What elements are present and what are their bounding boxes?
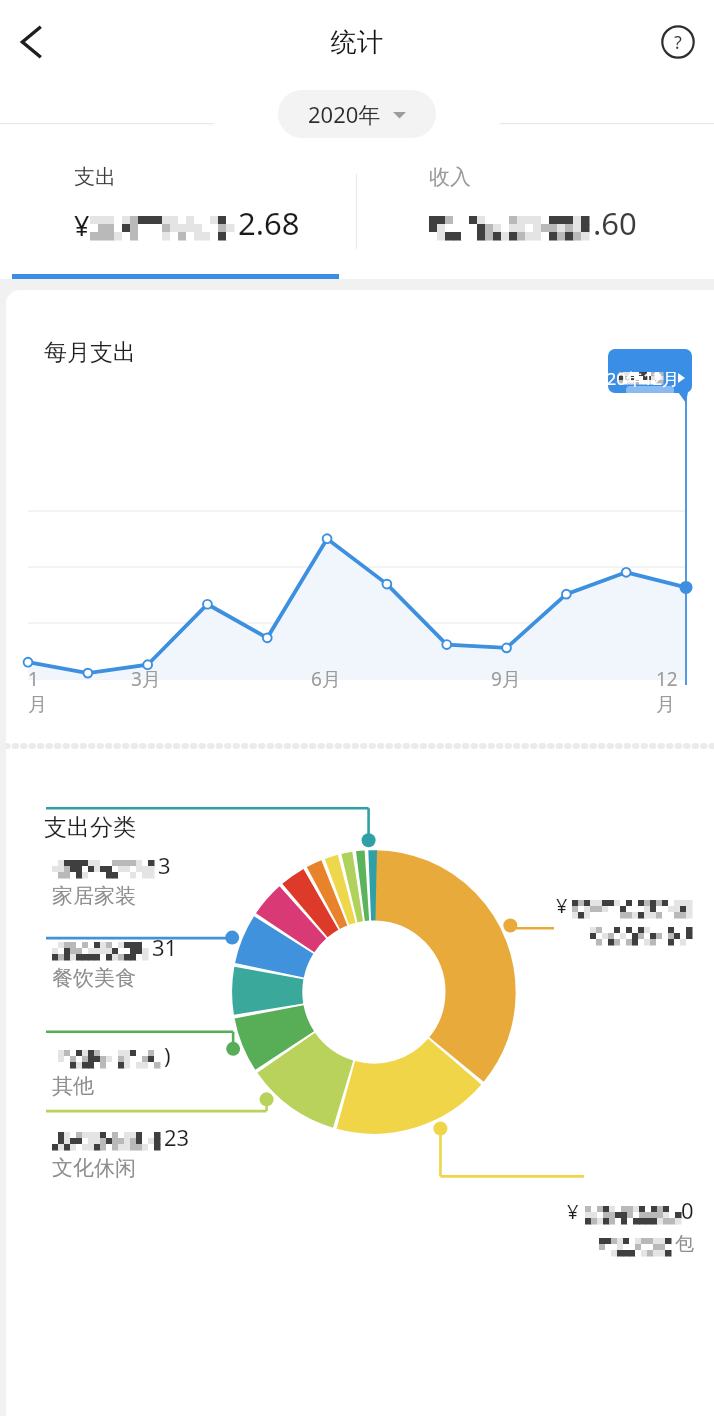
staticText: 3 (158, 850, 171, 880)
staticText: 餐饮美食 (52, 965, 136, 991)
staticText: 2020年 (308, 99, 381, 129)
staticText: 23 (164, 1122, 190, 1152)
button[interactable]: Back (0, 10, 64, 74)
staticText: ? (674, 30, 682, 55)
staticText: 支出 (74, 164, 116, 190)
staticText: 12月 (656, 666, 686, 717)
staticText: 3月 (131, 666, 161, 692)
staticText: 0 (681, 1195, 694, 1225)
staticText: 家居家装 (52, 883, 136, 909)
button[interactable]: 2020年 (278, 90, 436, 138)
staticText: 包 (675, 1232, 694, 1256)
button[interactable]: Help (648, 12, 708, 72)
staticText: 支出分类 (44, 813, 136, 842)
button[interactable]: 支出 (0, 144, 356, 279)
staticText: ¥ (74, 207, 90, 244)
staticText: ¥ (567, 1198, 579, 1225)
button[interactable]: 收入 (357, 144, 714, 279)
staticText: ¥ (556, 892, 568, 919)
staticText: 2020年12月 (587, 367, 680, 390)
staticText: 9月 (491, 666, 521, 692)
staticText: 31 (152, 932, 178, 962)
staticText: 2.68 (238, 202, 300, 244)
staticText: 1月 (28, 666, 57, 717)
staticText: .60 (593, 202, 637, 244)
staticText: 文化休闲 (52, 1155, 136, 1181)
staticText: 统计 (331, 26, 383, 59)
staticText: 每月支出 (44, 338, 136, 367)
staticText: 收入 (429, 164, 471, 190)
staticText: 6月 (311, 666, 341, 692)
staticText: 其他 (52, 1073, 94, 1099)
staticText: ) (164, 1040, 171, 1070)
